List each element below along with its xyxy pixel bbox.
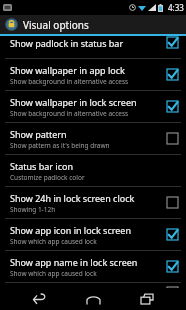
button[interactable]: Show wallpaper in lock screen xyxy=(0,91,186,122)
staticText: Showing 1-12h xyxy=(10,205,56,214)
staticText: Show padlock in status bar xyxy=(10,37,124,49)
button[interactable]: Status bar icon xyxy=(0,155,186,186)
button[interactable]: Unchecked xyxy=(166,286,179,299)
staticText: Visual options xyxy=(23,18,89,32)
staticText: Show which app caused lock xyxy=(10,269,97,278)
staticText: Show pattern as it's being drawn xyxy=(10,141,110,150)
button[interactable]: Show pattern xyxy=(0,123,186,154)
button[interactable]: Show app name in lock screen xyxy=(0,251,186,282)
staticText: Hide status icons and clock xyxy=(10,286,125,298)
button[interactable]: Show wallpaper in app lock xyxy=(0,59,186,90)
button[interactable]: Recent apps xyxy=(132,288,162,310)
staticText: Show app icon in lock screen xyxy=(10,224,131,236)
button[interactable]: Visual options xyxy=(0,15,186,34)
button[interactable]: Checked xyxy=(166,228,179,241)
staticText: Show wallpaper in lock screen xyxy=(10,96,137,108)
staticText: Show which app caused lock xyxy=(10,237,97,246)
staticText: Status bar icon xyxy=(10,160,73,172)
staticText: Customize padlock color xyxy=(10,173,85,182)
button[interactable]: Back xyxy=(24,288,54,310)
button[interactable]: Checked xyxy=(166,260,179,273)
button[interactable]: Hide status icons and clock xyxy=(0,283,186,301)
staticText: Show background in alternative access xyxy=(10,77,129,86)
button[interactable]: Show padlock in status bar xyxy=(0,36,186,58)
staticText: Show app name in lock screen xyxy=(10,256,138,268)
staticText: 4:33 xyxy=(168,2,184,13)
staticText: Show wallpaper in app lock xyxy=(10,64,125,76)
staticText: Show background in alternative access xyxy=(10,109,129,118)
button[interactable]: Unchecked xyxy=(166,196,179,209)
button[interactable]: Home xyxy=(78,288,108,310)
button[interactable]: Unchecked xyxy=(166,132,179,145)
staticText: Show 24h in lock screen clock xyxy=(10,192,135,204)
button[interactable]: Show app icon in lock screen xyxy=(0,219,186,250)
staticText: Show pattern xyxy=(10,128,67,140)
button[interactable]: Show 24h in lock screen clock xyxy=(0,187,186,218)
button[interactable]: Checked xyxy=(166,36,179,49)
button[interactable]: Checked xyxy=(166,100,179,113)
button[interactable]: Checked xyxy=(166,68,179,81)
